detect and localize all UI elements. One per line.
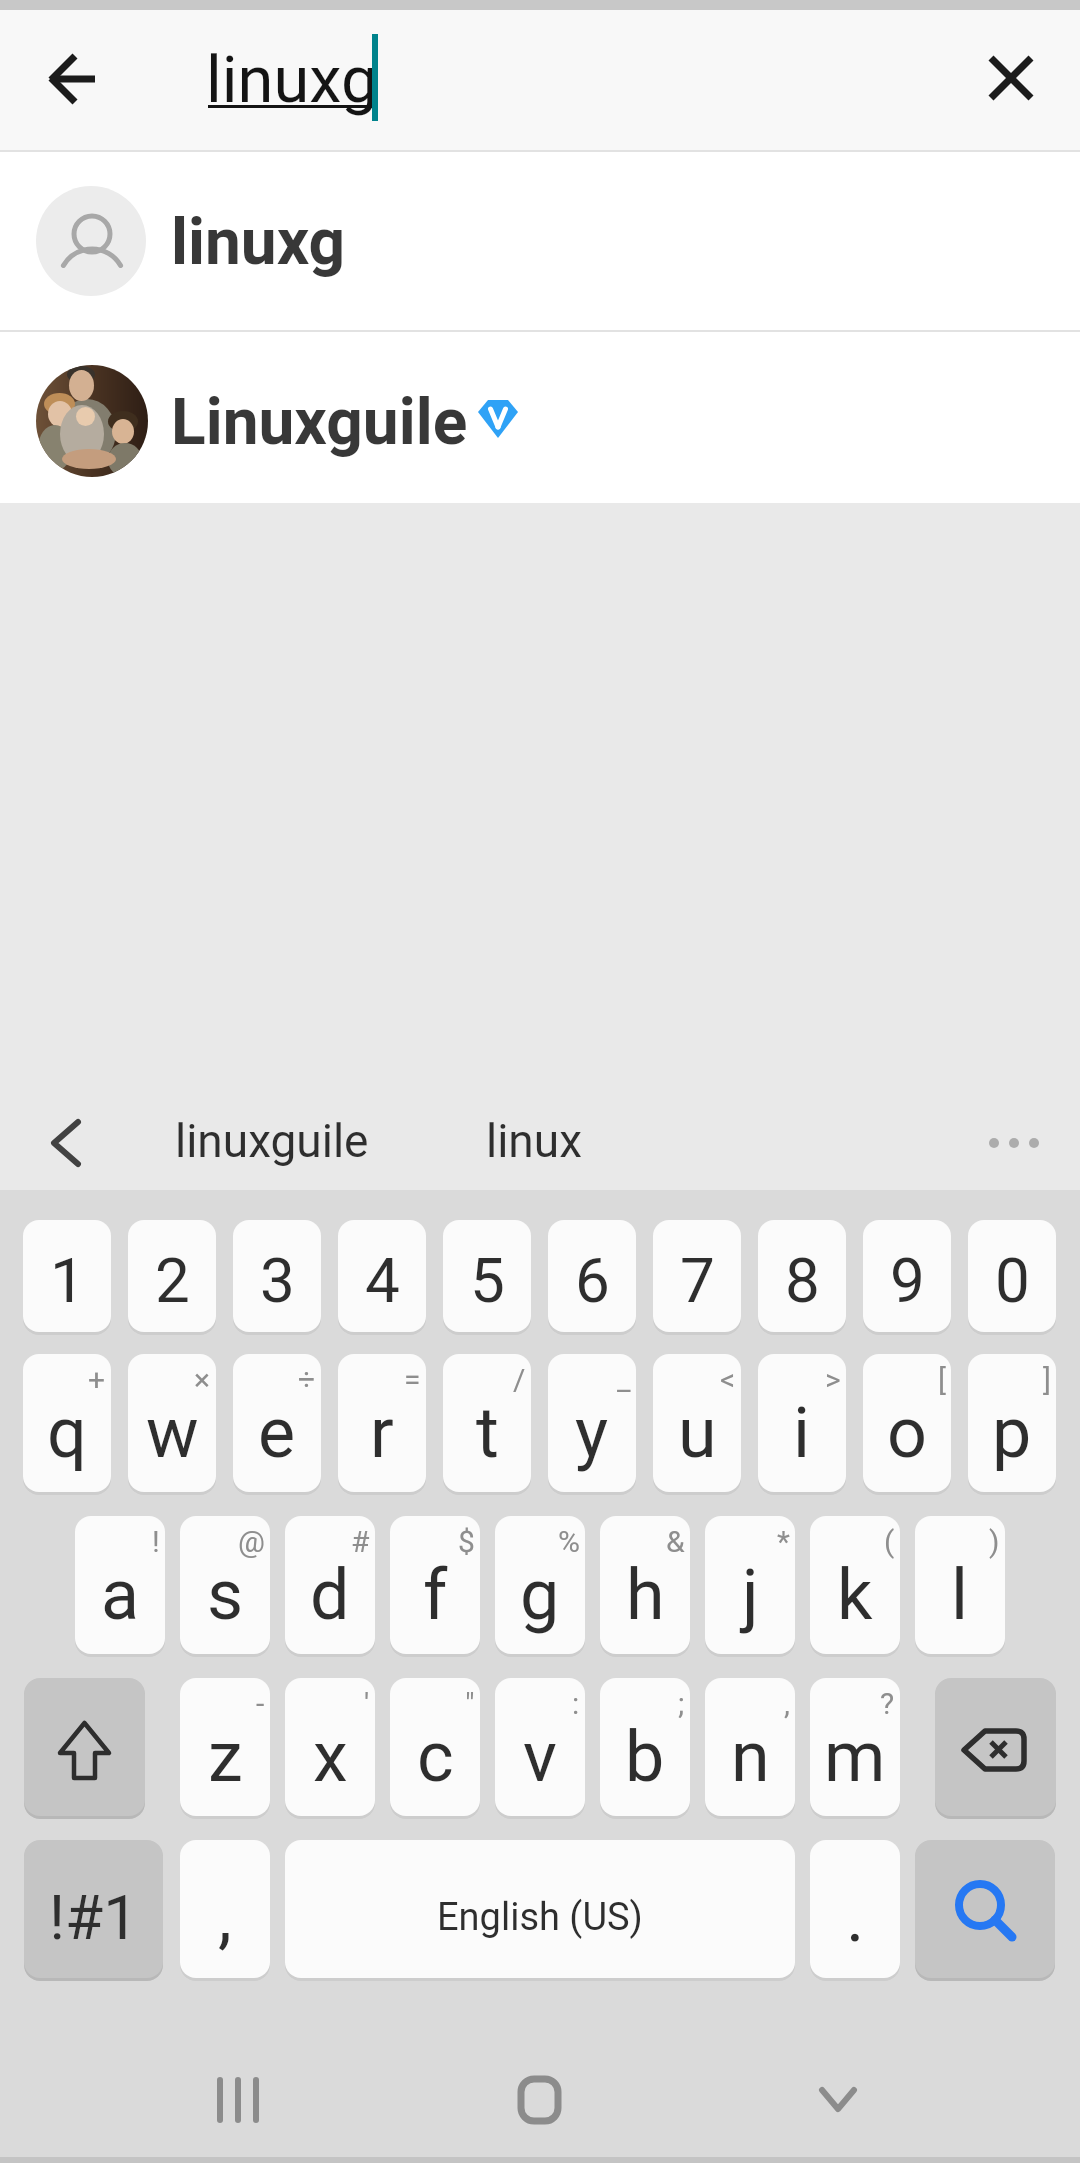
button[interactable]: 9 xyxy=(863,1220,951,1332)
staticText: r xyxy=(370,1392,394,1474)
button[interactable]: 0 xyxy=(968,1220,1056,1332)
button[interactable]: w xyxy=(128,1354,216,1492)
button[interactable]: q xyxy=(23,1354,111,1492)
staticText: d xyxy=(310,1554,350,1636)
staticText: 4 xyxy=(365,1244,400,1317)
staticText: + xyxy=(88,1362,106,1397)
button[interactable]: c xyxy=(390,1678,480,1816)
button[interactable]: , xyxy=(180,1840,270,1978)
button[interactable] xyxy=(24,1678,145,1816)
staticText: 2 xyxy=(155,1244,190,1317)
button[interactable]: m xyxy=(810,1678,900,1816)
staticText: b xyxy=(625,1716,665,1798)
staticText: × xyxy=(194,1362,211,1397)
button[interactable]: i xyxy=(758,1354,846,1492)
staticText: k xyxy=(837,1554,873,1636)
staticText: w xyxy=(146,1392,199,1474)
button[interactable]: j xyxy=(705,1516,795,1654)
button[interactable]: v xyxy=(495,1678,585,1816)
staticText: [ xyxy=(938,1362,946,1397)
staticText: y xyxy=(575,1392,609,1474)
staticText: ÷ xyxy=(298,1362,316,1397)
button[interactable]: h xyxy=(600,1516,690,1654)
staticText: ? xyxy=(880,1686,895,1721)
button[interactable]: k xyxy=(810,1516,900,1654)
staticText: !#1 xyxy=(49,1881,139,1954)
button[interactable] xyxy=(960,1105,1060,1181)
staticText: x xyxy=(313,1716,348,1798)
staticText: linux xyxy=(486,1114,582,1168)
button[interactable]: x xyxy=(285,1678,375,1816)
staticText: 0 xyxy=(995,1244,1030,1317)
button[interactable] xyxy=(160,2060,300,2140)
staticText: t xyxy=(476,1392,499,1474)
button[interactable]: n xyxy=(705,1678,795,1816)
staticText: linuxg xyxy=(171,205,346,280)
staticText: a xyxy=(101,1554,140,1636)
button[interactable]: 4 xyxy=(338,1220,426,1332)
staticText: > xyxy=(825,1362,841,1397)
staticText: linuxg xyxy=(206,42,378,118)
staticText: 3 xyxy=(260,1244,295,1317)
button[interactable]: s xyxy=(180,1516,270,1654)
staticText: 6 xyxy=(575,1244,610,1317)
button[interactable]: b xyxy=(600,1678,690,1816)
button[interactable]: 7 xyxy=(653,1220,741,1332)
button[interactable]: z xyxy=(180,1678,270,1816)
button[interactable]: 6 xyxy=(548,1220,636,1332)
staticText: & xyxy=(666,1524,685,1559)
staticText: o xyxy=(887,1392,927,1474)
button[interactable] xyxy=(935,1678,1056,1816)
button[interactable] xyxy=(961,28,1061,128)
button[interactable]: a xyxy=(75,1516,165,1654)
staticText: English (US) xyxy=(437,1895,643,1940)
button[interactable] xyxy=(0,152,1080,330)
staticText: 7 xyxy=(680,1244,715,1317)
staticText: 5 xyxy=(470,1244,505,1317)
staticText: ) xyxy=(989,1524,1000,1559)
staticText: $ xyxy=(458,1524,475,1559)
button[interactable]: f xyxy=(390,1516,480,1654)
staticText: @ xyxy=(238,1524,265,1559)
staticText: e xyxy=(258,1392,296,1474)
button[interactable]: 8 xyxy=(758,1220,846,1332)
button[interactable] xyxy=(470,2060,610,2140)
staticText: _ xyxy=(617,1362,631,1397)
staticText: l xyxy=(951,1554,969,1636)
staticText: ] xyxy=(1043,1362,1051,1397)
button[interactable]: e xyxy=(233,1354,321,1492)
button[interactable]: l xyxy=(915,1516,1005,1654)
button[interactable]: 3 xyxy=(233,1220,321,1332)
staticText: . xyxy=(846,1876,865,1958)
button[interactable]: p xyxy=(968,1354,1056,1492)
button[interactable]: . xyxy=(810,1840,900,1978)
staticText: 1 xyxy=(50,1244,85,1317)
button[interactable] xyxy=(25,30,125,130)
button[interactable]: t xyxy=(443,1354,531,1492)
button[interactable]: 5 xyxy=(443,1220,531,1332)
staticText: , xyxy=(218,1876,232,1958)
staticText: 8 xyxy=(785,1244,820,1317)
button[interactable]: d xyxy=(285,1516,375,1654)
button[interactable]: u xyxy=(653,1354,741,1492)
button[interactable]: 1 xyxy=(23,1220,111,1332)
staticText: s xyxy=(207,1554,244,1636)
button[interactable] xyxy=(770,2060,910,2140)
button[interactable]: g xyxy=(495,1516,585,1654)
staticText: " xyxy=(465,1686,475,1721)
button[interactable] xyxy=(440,1095,660,1191)
button[interactable] xyxy=(130,1095,410,1191)
staticText: , xyxy=(784,1686,790,1721)
staticText: g xyxy=(520,1554,560,1636)
button[interactable]: r xyxy=(338,1354,426,1492)
staticText: linuxguile xyxy=(175,1114,369,1168)
button[interactable]: o xyxy=(863,1354,951,1492)
button[interactable] xyxy=(30,1105,102,1181)
button[interactable]: !#1 xyxy=(24,1840,163,1978)
button[interactable]: English (US) xyxy=(285,1840,795,1978)
button[interactable]: y xyxy=(548,1354,636,1492)
button[interactable] xyxy=(0,332,1080,503)
staticText: ' xyxy=(364,1686,370,1721)
button[interactable] xyxy=(915,1840,1055,1978)
button[interactable]: 2 xyxy=(128,1220,216,1332)
